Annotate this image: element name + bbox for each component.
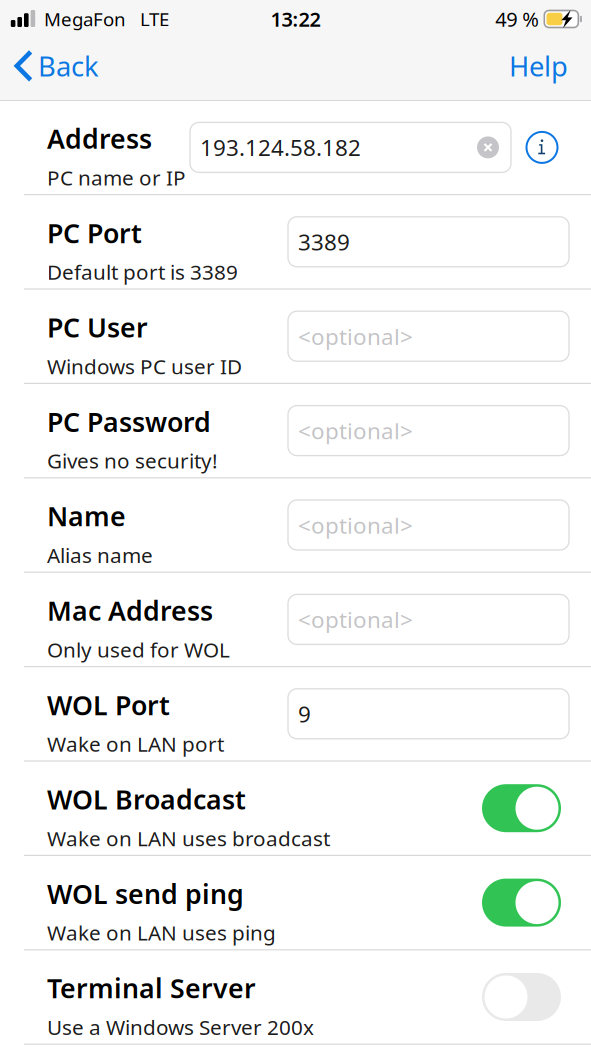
- staticText: Use a Windows Server 200x: [47, 1013, 314, 1041]
- staticText: 193.124.58.182: [200, 132, 361, 162]
- staticText: Only used for WOL: [47, 636, 230, 663]
- button[interactable]: Back: [0, 38, 115, 100]
- staticText: <optional>: [298, 321, 413, 351]
- staticText: <optional>: [298, 604, 413, 634]
- button[interactable]: Enabled: [482, 879, 561, 927]
- button[interactable]: Disabled: [482, 973, 561, 1021]
- staticText: Mac Address: [47, 593, 213, 628]
- staticText: 9: [298, 699, 311, 729]
- staticText: Address: [47, 121, 152, 156]
- staticText: Wake on LAN port: [47, 730, 224, 757]
- staticText: LTE: [140, 7, 169, 31]
- staticText: <optional>: [298, 416, 413, 445]
- staticText: Wake on LAN uses broadcast: [47, 824, 330, 852]
- staticText: <optional>: [298, 510, 413, 540]
- staticText: 3389: [298, 227, 350, 257]
- staticText: Name: [47, 498, 126, 534]
- staticText: Default port is 3389: [47, 258, 238, 285]
- button[interactable]: Address information: [522, 127, 562, 167]
- staticText: WOL send ping: [47, 876, 244, 911]
- staticText: PC Password: [47, 404, 211, 439]
- button[interactable]: Enabled: [482, 784, 561, 832]
- staticText: Wake on LAN uses ping: [47, 919, 276, 946]
- button[interactable]: Clear text: [473, 132, 503, 162]
- staticText: PC Port: [47, 215, 142, 250]
- staticText: 49 %: [495, 6, 539, 32]
- staticText: Terminal Server: [47, 970, 256, 1006]
- staticText: Back: [38, 48, 99, 84]
- staticText: WOL Broadcast: [47, 781, 246, 817]
- staticText: Windows PC user ID: [47, 352, 242, 380]
- staticText: Help: [509, 48, 568, 84]
- staticText: PC name or IP: [47, 164, 186, 191]
- button[interactable]: Help: [491, 38, 591, 100]
- staticText: MegaFon: [44, 7, 126, 31]
- staticText: Alias name: [47, 541, 153, 569]
- staticText: 13:22: [270, 6, 320, 32]
- staticText: Gives no security!: [47, 447, 218, 474]
- staticText: PC User: [47, 309, 148, 345]
- staticText: WOL Port: [47, 687, 170, 722]
